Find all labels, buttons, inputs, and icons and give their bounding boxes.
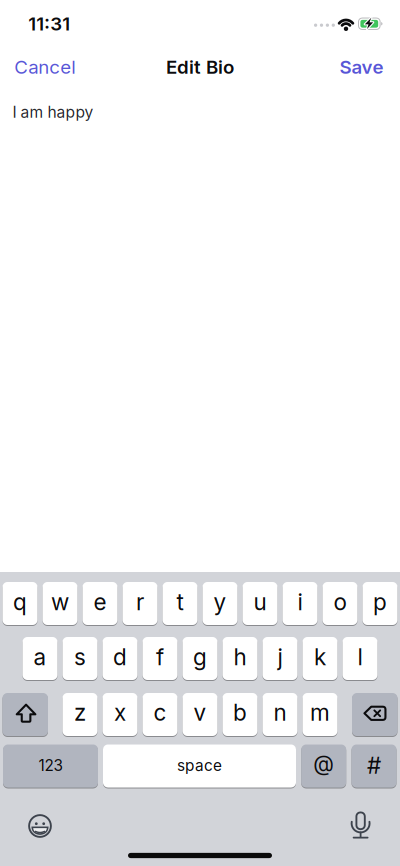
button[interactable]: b bbox=[222, 693, 257, 736]
staticText: a bbox=[33, 643, 46, 671]
button[interactable]: Emoji bbox=[25, 811, 55, 841]
staticText: v bbox=[193, 699, 206, 726]
staticText: space bbox=[177, 756, 222, 775]
button[interactable]: z bbox=[62, 693, 97, 736]
staticText: r bbox=[136, 588, 144, 616]
button[interactable]: Hash bbox=[351, 744, 396, 787]
button[interactable]: e bbox=[82, 582, 117, 625]
staticText: Cancel bbox=[14, 56, 76, 78]
staticText: e bbox=[93, 588, 106, 616]
button[interactable]: At bbox=[301, 744, 346, 787]
staticText: l bbox=[357, 643, 362, 671]
staticText: @ bbox=[313, 751, 334, 776]
staticText: k bbox=[314, 643, 326, 671]
staticText: # bbox=[367, 752, 381, 779]
button[interactable]: m bbox=[302, 693, 337, 736]
button[interactable]: Dictation bbox=[346, 810, 376, 840]
staticText: d bbox=[113, 643, 127, 671]
staticText: Edit Bio bbox=[166, 56, 234, 78]
staticText: x bbox=[114, 699, 126, 726]
staticText: I am happy bbox=[12, 103, 93, 121]
staticText: h bbox=[233, 643, 246, 671]
button[interactable]: Delete bbox=[352, 693, 397, 736]
button[interactable]: d bbox=[102, 637, 137, 680]
staticText: m bbox=[310, 699, 330, 726]
button[interactable]: n bbox=[262, 693, 297, 736]
staticText: n bbox=[273, 699, 286, 726]
button[interactable]: k bbox=[302, 637, 337, 680]
button[interactable]: r bbox=[122, 582, 157, 625]
button[interactable]: q bbox=[2, 582, 37, 625]
staticText: j bbox=[277, 643, 282, 671]
button[interactable]: o bbox=[322, 582, 357, 625]
button[interactable]: g bbox=[182, 637, 217, 680]
button[interactable]: s bbox=[62, 637, 97, 680]
button[interactable]: Space bbox=[103, 744, 296, 787]
button[interactable]: t bbox=[162, 582, 197, 625]
staticText: c bbox=[153, 699, 166, 726]
button[interactable]: a bbox=[22, 637, 57, 680]
button[interactable]: j bbox=[262, 637, 297, 680]
staticText: 123 bbox=[38, 756, 62, 775]
staticText: u bbox=[253, 588, 266, 616]
staticText: z bbox=[74, 699, 86, 726]
staticText: s bbox=[74, 643, 86, 671]
button[interactable]: Shift bbox=[2, 693, 48, 736]
button[interactable]: x bbox=[102, 693, 137, 736]
button[interactable]: c bbox=[142, 693, 177, 736]
button[interactable]: Cancel bbox=[14, 56, 76, 78]
staticText: p bbox=[373, 588, 387, 616]
button[interactable]: v bbox=[182, 693, 217, 736]
staticText: q bbox=[13, 588, 27, 616]
button[interactable]: u bbox=[242, 582, 277, 625]
staticText: 11:31 bbox=[28, 12, 70, 35]
staticText: w bbox=[51, 588, 69, 616]
button[interactable]: y bbox=[202, 582, 237, 625]
staticText: y bbox=[213, 588, 226, 616]
button[interactable]: w bbox=[42, 582, 77, 625]
staticText: b bbox=[233, 699, 247, 726]
staticText: i bbox=[297, 588, 302, 616]
button[interactable]: f bbox=[142, 637, 177, 680]
button[interactable]: p bbox=[362, 582, 397, 625]
button[interactable]: l bbox=[342, 637, 377, 680]
button[interactable]: i bbox=[282, 582, 317, 625]
staticText: g bbox=[193, 643, 207, 671]
staticText: f bbox=[156, 643, 164, 671]
staticText: t bbox=[176, 588, 183, 616]
button[interactable]: Save bbox=[340, 56, 384, 78]
button[interactable]: h bbox=[222, 637, 257, 680]
button[interactable]: Numbers bbox=[3, 744, 98, 787]
staticText: o bbox=[333, 588, 346, 616]
staticText: Save bbox=[340, 56, 384, 78]
